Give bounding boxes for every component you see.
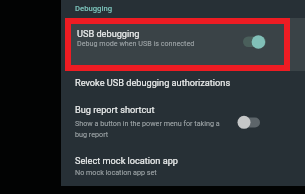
button[interactable] — [237, 111, 261, 133]
staticText: No mock location app set — [75, 168, 157, 176]
button[interactable]: Revoke USB debugging authorizations — [61, 73, 305, 100]
button[interactable]: Bug report shortcut — [61, 101, 305, 145]
staticText: Revoke USB debugging authorizations — [75, 77, 231, 88]
staticText: bug report — [75, 130, 109, 138]
button[interactable] — [65, 18, 305, 71]
staticText: Debugging — [75, 4, 113, 13]
staticText: Select mock location app — [75, 155, 178, 166]
staticText: Show a button in the power menu for taki… — [75, 119, 220, 127]
staticText: Debug mode when USB is connected — [77, 39, 195, 47]
button[interactable]: Select mock location app — [61, 150, 305, 186]
staticText: Bug report shortcut — [75, 104, 155, 115]
staticText: USB debugging — [77, 28, 140, 39]
button[interactable] — [244, 30, 268, 52]
